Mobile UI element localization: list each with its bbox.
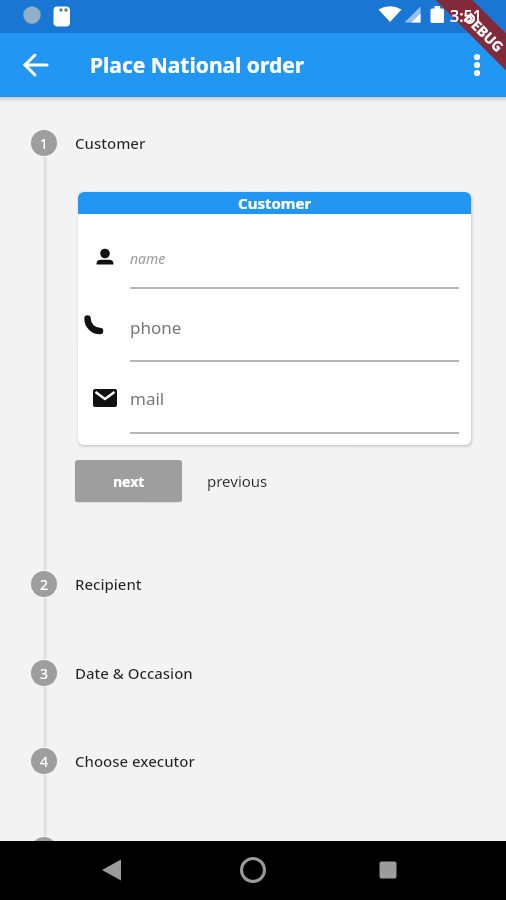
button[interactable] [370,852,406,888]
button[interactable] [459,47,495,83]
staticText: 3:51 [450,5,482,25]
staticText: 1 [40,134,49,153]
button[interactable]: 4 [31,748,57,774]
staticText: next [113,472,145,491]
staticText: Customer [75,133,146,153]
button[interactable] [130,312,460,362]
button[interactable] [130,240,460,289]
staticText: name [130,249,166,268]
staticText: Date & Occasion [75,663,193,683]
staticText: Choose executor [75,751,195,771]
staticText: 2 [40,575,49,594]
button[interactable]: 2 [31,571,57,597]
button[interactable]: 5 [31,837,57,841]
staticText: DEBUG [460,8,506,56]
button[interactable] [93,852,129,888]
staticText: Recipient [75,574,142,594]
staticText: previous [207,471,268,491]
button[interactable] [18,47,54,83]
button[interactable]: 1 [31,130,57,156]
staticText: 3 [40,664,49,683]
staticText: 4 [40,752,49,771]
button[interactable]: next [75,460,182,502]
staticText: Customer [238,193,312,213]
button[interactable] [235,852,271,888]
button[interactable]: previous [192,460,282,502]
button[interactable]: 3 [31,660,57,686]
staticText: phone [130,316,182,338]
staticText: mail [130,387,165,409]
staticText: Place National order [90,51,305,79]
button[interactable] [130,384,460,434]
